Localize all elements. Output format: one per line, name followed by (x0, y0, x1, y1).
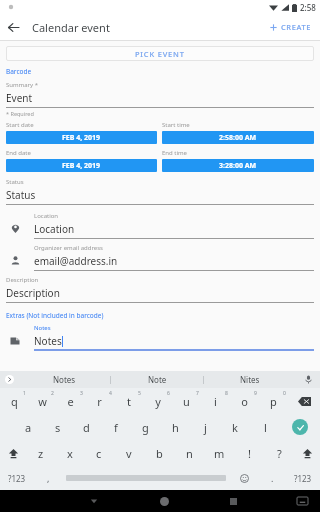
button[interactable]: ? (264, 440, 294, 466)
button[interactable]: , (34, 466, 62, 490)
button[interactable]: n (174, 440, 204, 466)
staticText: Status (6, 178, 24, 186)
button[interactable]: e (56, 388, 85, 414)
button[interactable]: l (250, 414, 280, 440)
button[interactable]: CREATE (263, 18, 318, 36)
staticText: Location (34, 212, 59, 220)
button[interactable]: PICK EVENT (6, 46, 314, 61)
staticText: w (38, 394, 47, 409)
button[interactable]: Nites (204, 371, 296, 388)
button[interactable]: p (259, 388, 288, 414)
button[interactable]: f (101, 414, 130, 440)
staticText: Barcode (6, 67, 32, 76)
staticText: g (142, 420, 149, 435)
staticText: * Required (6, 110, 34, 117)
button[interactable]: c (84, 440, 114, 466)
button[interactable]: j (190, 414, 220, 440)
staticText: ?123 (8, 473, 26, 484)
staticText: n (186, 446, 193, 461)
staticText: 9 (254, 390, 257, 397)
button[interactable]: t (114, 388, 143, 414)
button[interactable]: Recents (219, 490, 247, 512)
staticText: End time (162, 149, 188, 157)
button[interactable]: . (258, 466, 286, 490)
staticText: i (214, 394, 217, 409)
button[interactable]: Enter (280, 414, 320, 440)
staticText: 2 (51, 390, 54, 397)
button[interactable]: x (55, 440, 84, 466)
button[interactable]: u (172, 388, 201, 414)
button[interactable]: Note (111, 371, 203, 388)
staticText: f (114, 420, 118, 435)
staticText: 8 (225, 390, 228, 397)
button[interactable]: w (28, 388, 56, 414)
staticText: Calendar event (32, 20, 110, 35)
button[interactable]: Space (62, 466, 230, 490)
staticText: Status (6, 188, 36, 202)
button[interactable]: Notes (18, 371, 110, 388)
button[interactable]: y (143, 388, 172, 414)
button[interactable]: ?123 (0, 466, 34, 490)
staticText: Summary * (6, 81, 38, 89)
staticText: ? (277, 446, 282, 461)
staticText: v (126, 446, 132, 461)
button[interactable]: z (26, 440, 55, 466)
button[interactable]: FEB 4, 2019 (6, 159, 157, 172)
button[interactable]: a (14, 414, 43, 440)
button[interactable]: Back (0, 14, 26, 40)
button[interactable]: FEB 4, 2019 (6, 131, 157, 144)
staticText: o (241, 394, 248, 409)
button[interactable]: d (72, 414, 101, 440)
button[interactable]: b (144, 440, 174, 466)
staticText: 1 (23, 390, 26, 397)
staticText: Location (34, 222, 75, 236)
button[interactable]: ! (234, 440, 264, 466)
button[interactable]: h (160, 414, 190, 440)
staticText: 3 (80, 390, 83, 397)
staticText: Description (6, 286, 60, 300)
button[interactable]: r (85, 388, 114, 414)
button[interactable]: Backspace (288, 388, 320, 414)
staticText: email@address.in (34, 254, 118, 268)
staticText: Description (6, 276, 39, 284)
button[interactable]: Switch keyboard (288, 490, 316, 512)
button[interactable]: Expand suggestions (0, 371, 18, 388)
button[interactable]: m (204, 440, 234, 466)
button[interactable]: k (220, 414, 250, 440)
staticText: FEB 4, 2019 (62, 161, 101, 171)
staticText: b (156, 446, 163, 461)
button[interactable]: 3:28:00 AM (162, 159, 314, 172)
staticText: ! (248, 446, 251, 461)
button[interactable]: i (201, 388, 230, 414)
staticText: 2:58 (300, 2, 316, 13)
button[interactable]: ?123 (286, 466, 320, 490)
staticText: h (172, 420, 179, 435)
button[interactable]: g (130, 414, 160, 440)
staticText: Note (148, 374, 167, 385)
button[interactable]: Shift (294, 440, 320, 466)
button[interactable]: o (230, 388, 259, 414)
staticText: Nites (240, 374, 260, 385)
button[interactable]: Home (150, 490, 178, 512)
button[interactable]: v (114, 440, 144, 466)
button[interactable]: Voice input (296, 371, 320, 388)
staticText: Notes (53, 374, 76, 385)
button[interactable]: Back (80, 490, 108, 512)
staticText: p (270, 394, 277, 409)
staticText: l (264, 420, 267, 435)
staticText: Notes (34, 334, 62, 348)
staticText: , (47, 472, 50, 484)
staticText: u (183, 394, 190, 409)
button[interactable]: Emoji (230, 466, 258, 490)
staticText: t (127, 394, 131, 409)
staticText: Extras (Not included in barcode) (6, 311, 104, 320)
staticText: . (271, 472, 274, 484)
staticText: a (25, 420, 32, 435)
button[interactable]: s (43, 414, 72, 440)
staticText: FEB 4, 2019 (62, 133, 101, 143)
button[interactable]: Shift (0, 440, 26, 466)
staticText: PICK EVENT (135, 49, 185, 59)
button[interactable]: q (0, 388, 28, 414)
button[interactable]: 2:58:00 AM (162, 131, 314, 144)
staticText: 2:58:00 AM (219, 133, 257, 143)
